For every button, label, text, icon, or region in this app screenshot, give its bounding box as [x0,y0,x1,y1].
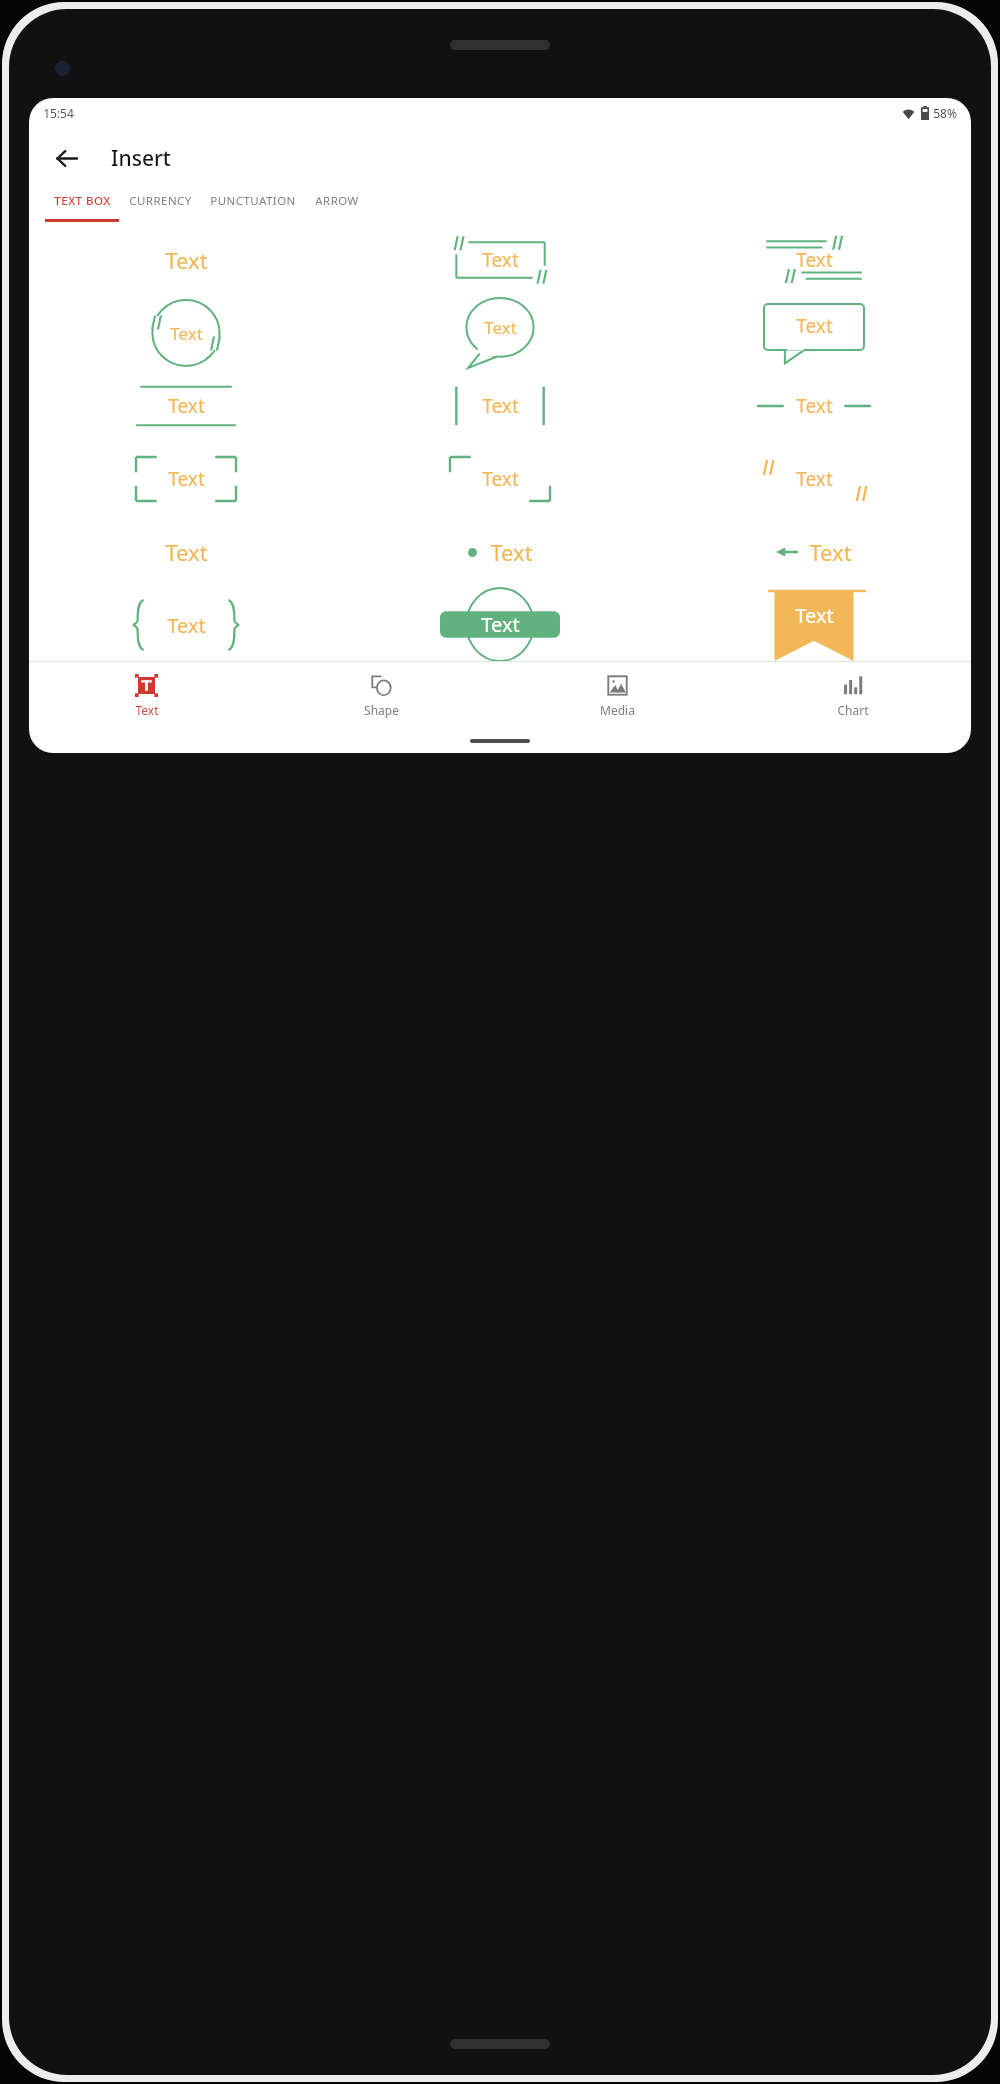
staticText: Text [484,316,517,339]
button[interactable]: Text [29,442,343,515]
button[interactable]: Text [343,515,657,588]
button[interactable]: Text [343,224,657,296]
staticText: Text [490,537,533,567]
button[interactable]: Text [29,515,343,588]
staticText: 58% [933,105,957,121]
staticText: Text [168,393,205,419]
staticText: Insert [111,144,171,173]
staticText: Text [482,466,519,492]
staticText: 15:54 [43,105,74,121]
staticText: Text [165,245,208,275]
button[interactable]: Text [29,224,343,296]
staticText: Text [165,537,208,567]
button[interactable]: Back [45,137,87,179]
button[interactable]: Text [657,296,971,369]
button[interactable]: Chart [735,662,971,729]
staticText: TEXT BOX [54,193,111,209]
staticText: Text [135,702,159,718]
button[interactable]: ARROW [304,188,370,224]
staticText: Text [481,611,520,638]
button[interactable]: Text [29,296,343,369]
staticText: Text [796,466,833,492]
button[interactable]: Shape [264,662,499,729]
button[interactable]: TEXT BOX [45,188,119,224]
button[interactable]: Text [657,442,971,515]
staticText: Text [167,612,206,639]
button[interactable]: Text [657,369,971,442]
staticText: Text [482,247,519,273]
button[interactable]: Text [343,369,657,442]
staticText: Text [809,537,852,567]
staticText: Shape [364,702,399,718]
staticText: Text [482,393,519,419]
button[interactable]: Text [29,369,343,442]
staticText: CURRENCY [129,193,192,209]
staticText: ARROW [315,193,359,209]
button[interactable]: Text [29,662,264,729]
button[interactable]: Text [657,515,971,588]
button[interactable]: PUNCTUATION [201,188,304,224]
staticText: Text [796,313,833,339]
staticText: Media [600,702,635,718]
staticText: PUNCTUATION [210,193,296,209]
button[interactable]: Media [499,662,735,729]
button[interactable]: Text [343,442,657,515]
button[interactable]: CURRENCY [119,188,201,224]
staticText: Text [168,466,205,492]
staticText: Text [796,393,833,419]
button[interactable]: Text [343,296,657,369]
button[interactable]: Text [29,588,343,661]
staticText: Text [170,322,203,345]
button[interactable]: Text [343,588,657,661]
staticText: Chart [837,702,869,718]
staticText: Text [796,247,833,273]
staticText: Text [795,602,834,629]
button[interactable]: Text [657,588,971,661]
button[interactable]: Text [657,224,971,296]
